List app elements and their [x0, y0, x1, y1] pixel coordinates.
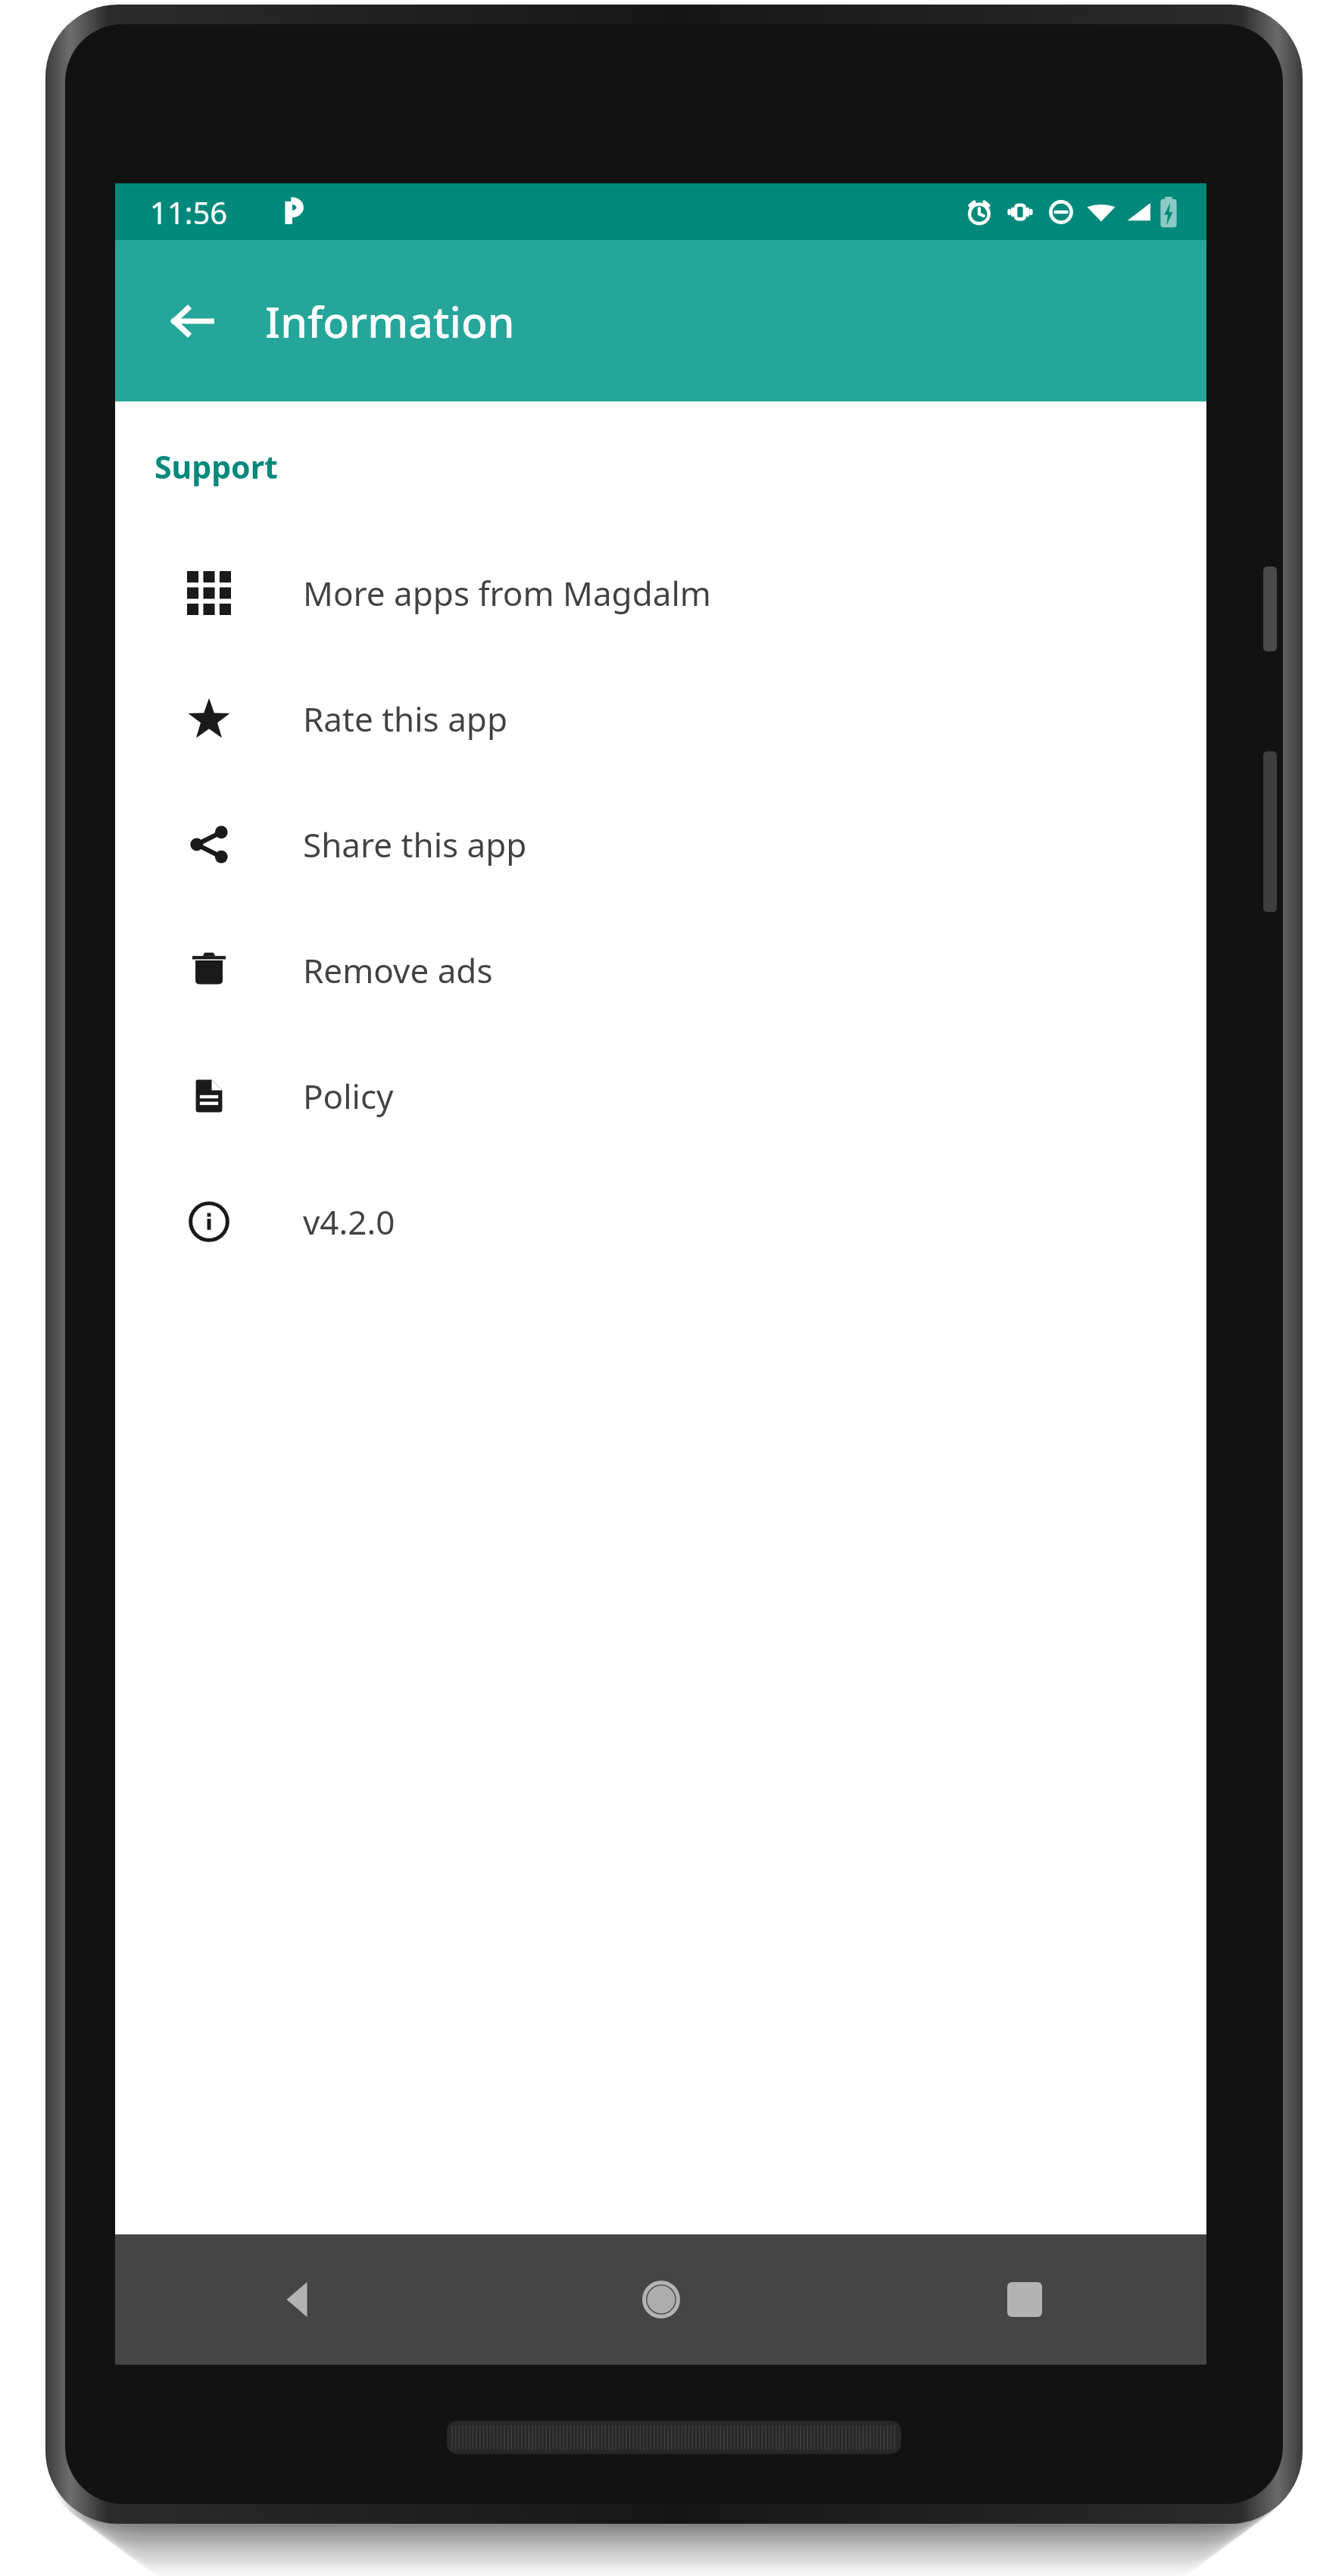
button[interactable]: Back — [115, 2234, 479, 2365]
button[interactable]: Home — [479, 2234, 843, 2365]
button[interactable]: Rate this app — [115, 656, 1206, 782]
staticText: Policy — [303, 1073, 394, 1119]
button[interactable]: Policy — [115, 1033, 1206, 1159]
button[interactable]: Share this app — [115, 782, 1206, 907]
button[interactable]: Remove ads — [115, 907, 1206, 1033]
staticText: Share this app — [303, 822, 527, 867]
button[interactable]: v4.2.0 — [115, 1159, 1206, 1285]
button[interactable]: Recent apps — [843, 2234, 1206, 2365]
staticText: v4.2.0 — [303, 1199, 395, 1244]
button[interactable]: More apps from Magdalm — [115, 530, 1206, 656]
staticText: More apps from Magdalm — [303, 570, 711, 616]
staticText: Support — [154, 445, 278, 488]
button[interactable]: Back — [156, 285, 229, 358]
staticText: 11:56 — [150, 192, 228, 233]
staticText: Rate this app — [303, 696, 507, 742]
staticText: Remove ads — [303, 948, 493, 993]
staticText: Information — [265, 292, 515, 351]
